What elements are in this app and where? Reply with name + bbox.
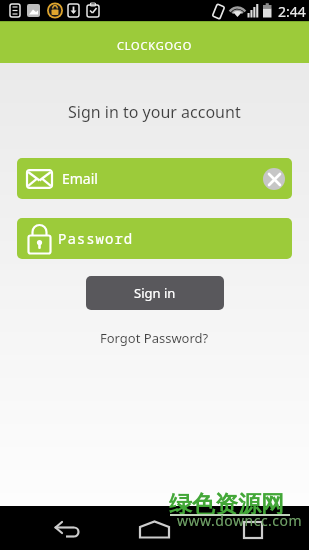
staticText: Sign in to your account: [68, 101, 241, 123]
staticText: Password: [58, 229, 134, 248]
staticText: Sign in: [134, 284, 176, 302]
staticText: CLOCKGOGO: [117, 38, 193, 53]
staticText: www.downcc.com: [177, 511, 303, 530]
button[interactable]: Email: [17, 158, 292, 199]
staticText: Email: [62, 169, 98, 188]
staticText: 绿色资源网: [169, 490, 284, 519]
staticText: 2:44: [278, 2, 306, 21]
button[interactable]: Sign in: [86, 276, 224, 310]
button[interactable]: Password: [17, 218, 292, 259]
button[interactable]: [263, 168, 285, 190]
button[interactable]: Forgot Password?: [100, 329, 209, 347]
